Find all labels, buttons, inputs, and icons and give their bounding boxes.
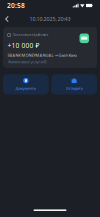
staticText: Финансовые услуги (7, 59, 42, 64)
staticText: 10.10.2025, 20:43 (29, 15, 70, 23)
button[interactable]: Back (2, 13, 11, 25)
staticText: SBANK MONEYMANUAL → Gash Kano (7, 52, 76, 58)
button[interactable]: Документы (3, 74, 49, 94)
staticText: Документы (15, 85, 36, 91)
staticText: +10 000 ₽ (7, 41, 39, 50)
button[interactable]: Оспорить (51, 74, 97, 94)
staticText: Пополнение обработано (12, 33, 48, 37)
staticText: 20:58 (7, 1, 25, 10)
staticText: Оспорить (66, 85, 83, 91)
